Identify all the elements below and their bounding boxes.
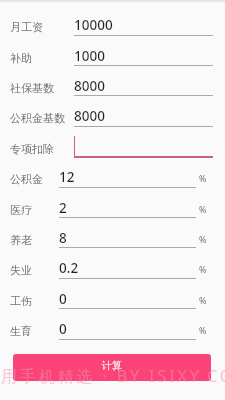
button[interactable]: 公积金 (0, 157, 225, 187)
staticText: 0.2 (59, 259, 79, 277)
button[interactable]: 生育 (0, 309, 225, 339)
staticText: 8 (59, 229, 67, 247)
staticText: % (199, 263, 207, 275)
staticText: 专项扣除 (10, 142, 54, 156)
staticText: 工伤 (10, 294, 32, 308)
staticText: 8000 (74, 77, 105, 95)
staticText: 2 (59, 199, 67, 217)
button[interactable]: 失业 (0, 248, 225, 278)
button[interactable]: 补助 (0, 36, 225, 66)
staticText: 1000 (74, 47, 105, 65)
staticText: 月工资 (10, 20, 43, 34)
staticText: 生育 (10, 324, 32, 338)
button[interactable]: 工伤 (0, 279, 225, 309)
staticText: 养老 (10, 233, 32, 247)
staticText: 社保基数 (10, 81, 54, 95)
staticText: % (199, 233, 207, 245)
button[interactable]: 社保基数 (0, 66, 225, 96)
staticText: % (199, 203, 207, 215)
button[interactable]: 专项扣除 (0, 127, 225, 157)
staticText: 公积金 (10, 172, 43, 186)
staticText: % (199, 294, 207, 306)
staticText: 0 (59, 290, 67, 308)
staticText: 失业 (10, 263, 32, 277)
button[interactable]: 公积金基数 (0, 96, 225, 126)
staticText: % (199, 324, 207, 336)
staticText: 10000 (74, 16, 113, 34)
button[interactable]: 医疗 (0, 188, 225, 218)
staticText: 用手机精选 · BY ISIXY.CO (1, 365, 225, 387)
staticText: 8000 (74, 107, 105, 125)
staticText: 12 (59, 168, 75, 186)
button[interactable]: 月工资 (0, 5, 225, 35)
button[interactable]: 计算 (13, 354, 211, 381)
staticText: 公积金基数 (10, 111, 65, 125)
staticText: 医疗 (10, 203, 32, 217)
staticText: 0 (59, 320, 67, 338)
staticText: 补助 (10, 51, 32, 65)
staticText: 计算 (102, 359, 122, 372)
button[interactable]: 养老 (0, 218, 225, 248)
staticText: % (199, 172, 207, 184)
